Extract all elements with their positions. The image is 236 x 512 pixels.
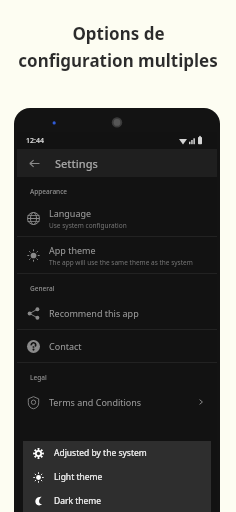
staticText: Recommend this app [49, 307, 139, 319]
button[interactable]: Adjusted by the system [23, 441, 211, 465]
button[interactable]: Dark theme [23, 489, 211, 512]
button[interactable]: Terms and Conditions [17, 386, 217, 418]
button[interactable]: Back [23, 152, 45, 174]
button[interactable]: Recommend this app [17, 297, 217, 329]
button[interactable]: Contact [17, 330, 217, 362]
staticText: App theme [49, 244, 96, 256]
staticText: Options de [72, 22, 165, 45]
staticText: 12:44 [26, 136, 44, 146]
staticText: Contact [49, 340, 82, 352]
staticText: Legal [30, 373, 47, 382]
staticText: Terms and Conditions [49, 396, 142, 408]
staticText: configuration multiples [18, 49, 218, 72]
staticText: Dark theme [54, 495, 102, 507]
button[interactable]: App theme [17, 237, 217, 273]
staticText: Use system configuration [49, 221, 127, 230]
staticText: General [30, 284, 55, 293]
staticText: The app will use the same theme as the s… [49, 258, 193, 267]
staticText: Appearance [30, 187, 68, 196]
staticText: Light theme [54, 471, 103, 483]
button[interactable]: Light theme [23, 465, 211, 489]
staticText: Language [49, 207, 92, 219]
staticText: Adjusted by the system [54, 447, 147, 459]
button[interactable]: Language [17, 200, 217, 236]
staticText: Settings [55, 156, 98, 171]
